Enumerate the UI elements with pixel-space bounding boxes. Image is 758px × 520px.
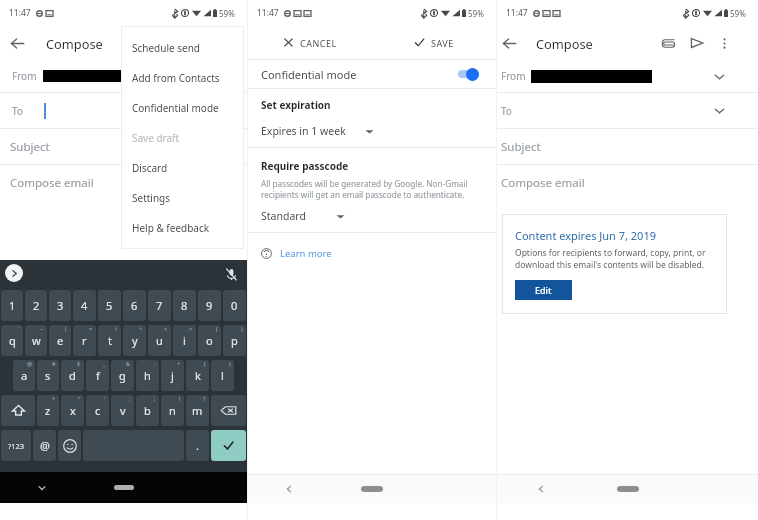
staticText: To (501, 104, 512, 118)
button[interactable]: a (13, 360, 35, 391)
staticText: . (196, 438, 199, 453)
staticText: ~ (40, 325, 44, 332)
button[interactable]: e (49, 325, 71, 356)
button[interactable]: 2 (25, 290, 47, 321)
staticText: m (192, 403, 203, 418)
button[interactable]: t (98, 325, 121, 356)
staticText: Subject (10, 139, 50, 155)
button[interactable]: 4 (73, 290, 96, 321)
staticText: 59% (219, 8, 235, 19)
button[interactable]: Standard (248, 208, 496, 224)
button[interactable]: n (161, 395, 184, 426)
button[interactable]: p (223, 325, 246, 356)
staticText: | (64, 325, 68, 332)
button[interactable]: x (61, 395, 84, 426)
button[interactable]: Schedule send (121, 33, 244, 63)
button[interactable]: . (186, 430, 209, 461)
button[interactable]: Edit (515, 280, 572, 300)
button[interactable]: More options (711, 30, 737, 56)
staticText: n (169, 403, 176, 418)
button[interactable]: Shift (1, 395, 35, 426)
button[interactable]: Attach file (654, 29, 682, 57)
button[interactable]: y (123, 325, 146, 356)
staticText: Discard (132, 161, 168, 175)
button[interactable]: k (186, 360, 209, 391)
button[interactable]: d (61, 360, 84, 391)
staticText: Expires in 1 week (261, 124, 346, 138)
button[interactable]: u (148, 325, 171, 356)
staticText: l (221, 368, 224, 383)
button[interactable]: Expand toolbar (5, 264, 23, 282)
button[interactable]: j (161, 360, 184, 391)
button[interactable]: q (1, 325, 23, 356)
staticText: Help & feedback (132, 221, 210, 235)
button[interactable]: 1 (1, 290, 23, 321)
button[interactable]: Backspace (211, 395, 246, 426)
button[interactable]: Add from Contacts (121, 63, 244, 93)
staticText: Schedule send (132, 41, 201, 55)
button[interactable]: 7 (148, 290, 171, 321)
staticText: Learn more (280, 247, 332, 260)
button[interactable]: r (73, 325, 96, 356)
button[interactable]: z (37, 395, 59, 426)
button[interactable]: @ (33, 430, 56, 461)
staticText: All passcodes will be generated by Googl… (261, 178, 494, 200)
button[interactable]: Discard (121, 153, 244, 183)
button[interactable]: Settings (121, 183, 244, 213)
staticText: Subject (501, 139, 541, 155)
button[interactable]: Learn more (248, 247, 496, 260)
button[interactable]: Home (83, 472, 165, 503)
button[interactable]: Back (497, 31, 521, 55)
staticText: ! (179, 395, 181, 402)
staticText: Edit (535, 284, 552, 296)
staticText: CANCEL (300, 37, 337, 49)
button[interactable]: Hide keyboard (0, 472, 83, 503)
staticText: : (129, 395, 131, 402)
staticText: w (32, 333, 41, 348)
button[interactable]: SAVE (372, 26, 496, 59)
staticText: 5 (106, 298, 113, 313)
button[interactable]: Expires in 1 week (248, 123, 496, 139)
button[interactable]: 6 (123, 290, 146, 321)
button[interactable]: Save draft (121, 123, 244, 153)
button[interactable]: l (211, 360, 234, 391)
staticText: Content expires Jun 7, 2019 (515, 228, 656, 243)
button[interactable]: i (173, 325, 196, 356)
staticText: @ (40, 438, 50, 453)
button[interactable]: Back (0, 26, 34, 60)
button[interactable]: Back (497, 475, 584, 503)
button[interactable]: 9 (198, 290, 221, 321)
staticText: ? (203, 395, 206, 402)
button[interactable]: 0 (223, 290, 246, 321)
button[interactable]: Symbols (1, 430, 31, 461)
button[interactable]: Back (248, 475, 330, 503)
button[interactable]: 5 (98, 290, 121, 321)
button[interactable]: 3 (49, 290, 71, 321)
staticText: Confidential mode (261, 67, 357, 82)
button[interactable]: Emoji (58, 430, 81, 461)
button[interactable]: s (37, 360, 59, 391)
staticText: a (21, 368, 28, 383)
button[interactable]: Help & feedback (121, 213, 244, 243)
button[interactable]: w (25, 325, 47, 356)
button[interactable]: Send (683, 29, 711, 57)
button[interactable]: CANCEL (248, 26, 372, 59)
button[interactable]: f (86, 360, 109, 391)
button[interactable]: m (186, 395, 209, 426)
button[interactable]: Voice input off (223, 266, 239, 282)
staticText: 4 (81, 298, 88, 313)
button[interactable]: h (136, 360, 159, 391)
button[interactable]: Confidential mode (121, 93, 244, 123)
button[interactable]: o (198, 325, 221, 356)
button[interactable]: v (111, 395, 134, 426)
button[interactable]: Home (330, 475, 413, 503)
staticText: < (164, 325, 168, 332)
button[interactable]: 8 (173, 290, 196, 321)
button[interactable]: b (136, 395, 159, 426)
button[interactable]: Enter (211, 430, 246, 461)
button[interactable]: Confidential mode (248, 60, 496, 88)
button[interactable]: g (111, 360, 134, 391)
button[interactable]: Home (584, 475, 671, 503)
button[interactable]: c (86, 395, 109, 426)
